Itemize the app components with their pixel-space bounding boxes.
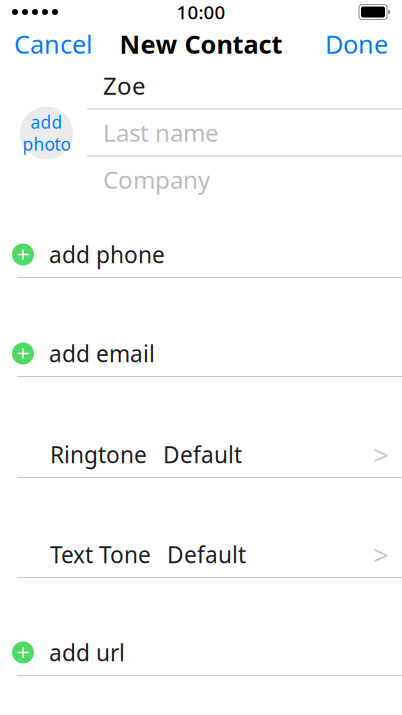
staticText: Zoe bbox=[103, 70, 146, 101]
staticText: 10:00 bbox=[176, 0, 225, 24]
staticText: Ringtone bbox=[50, 439, 147, 469]
staticText: Default bbox=[167, 539, 246, 569]
staticText: Last name bbox=[103, 117, 219, 148]
button[interactable]: add phone bbox=[0, 232, 402, 278]
staticText: Done bbox=[325, 27, 388, 61]
staticText: add bbox=[30, 110, 62, 133]
staticText: photo bbox=[22, 132, 70, 155]
staticText: Company bbox=[103, 164, 210, 195]
staticText: Default bbox=[163, 439, 242, 469]
staticText: > bbox=[373, 436, 389, 473]
button[interactable]: add bbox=[20, 106, 73, 159]
button[interactable]: Cancel bbox=[0, 19, 107, 69]
button[interactable]: Done bbox=[311, 19, 402, 69]
staticText: add email bbox=[49, 338, 155, 368]
staticText: Text Tone bbox=[50, 539, 151, 569]
staticText: add phone bbox=[49, 239, 165, 269]
staticText: add url bbox=[49, 637, 125, 667]
button[interactable]: add email bbox=[0, 331, 402, 377]
staticText: New Contact bbox=[119, 27, 282, 61]
button[interactable]: Text Tone bbox=[0, 532, 402, 578]
staticText: Cancel bbox=[14, 27, 93, 61]
button[interactable]: add url bbox=[0, 630, 402, 676]
button[interactable]: Ringtone bbox=[0, 432, 402, 478]
staticText: > bbox=[373, 536, 389, 573]
